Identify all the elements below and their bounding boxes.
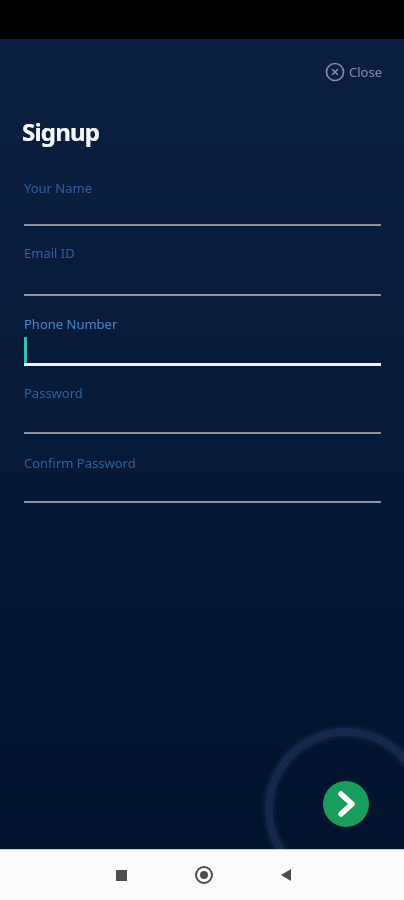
staticText: Close xyxy=(349,63,382,81)
button[interactable] xyxy=(186,857,222,893)
button[interactable]: Close xyxy=(322,59,386,85)
staticText: Your Name xyxy=(24,179,93,197)
button[interactable] xyxy=(103,857,139,893)
staticText: Confirm Password xyxy=(24,454,136,472)
staticText: Phone Number xyxy=(24,315,118,333)
staticText: Signup xyxy=(22,115,100,148)
staticText: Email ID xyxy=(24,244,75,262)
button[interactable] xyxy=(323,781,369,827)
staticText: Password xyxy=(24,384,83,402)
button[interactable] xyxy=(268,857,304,893)
